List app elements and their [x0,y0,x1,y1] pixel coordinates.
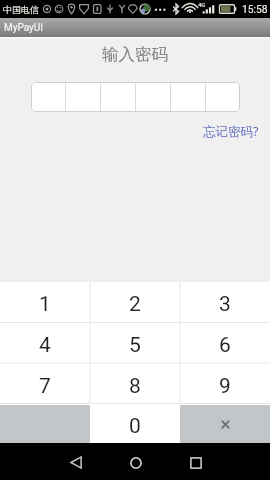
staticText: 6 [219,333,231,358]
staticText: 4G [198,1,206,8]
staticText: 1 [39,292,51,317]
button[interactable]: 1 [0,282,90,323]
button[interactable]: 4 [0,323,90,364]
button[interactable] [31,82,240,112]
button[interactable]: 5 [90,323,180,364]
button[interactable]: 8 [90,364,180,405]
button[interactable]: 0 [90,405,180,443]
staticText: 4 [39,333,51,358]
button[interactable]: 忘记密码? [203,122,270,140]
staticText: 2 [129,292,141,317]
button[interactable]: 3 [180,282,270,323]
button[interactable]: 9 [180,364,270,405]
button[interactable]: 6 [180,323,270,364]
staticText: 输入密码 [102,44,168,65]
button[interactable]: Back [54,444,98,480]
button[interactable]: Home [114,444,158,480]
staticText: 忘记密码? [203,123,259,140]
button[interactable]: 7 [0,364,90,405]
button[interactable]: Recents [174,444,218,480]
staticText: 3 [219,292,231,317]
staticText: MyPayUI [4,22,44,34]
staticText: 0 [129,414,141,439]
staticText: 中国电信 [3,4,39,15]
staticText: 15:58 [242,3,268,15]
staticText: 9 [219,374,231,399]
staticText: 8 [129,374,141,399]
staticText: 5 [129,333,141,358]
button[interactable]: 2 [90,282,180,323]
staticText: 7 [39,374,51,399]
button[interactable]: Delete [180,405,270,443]
